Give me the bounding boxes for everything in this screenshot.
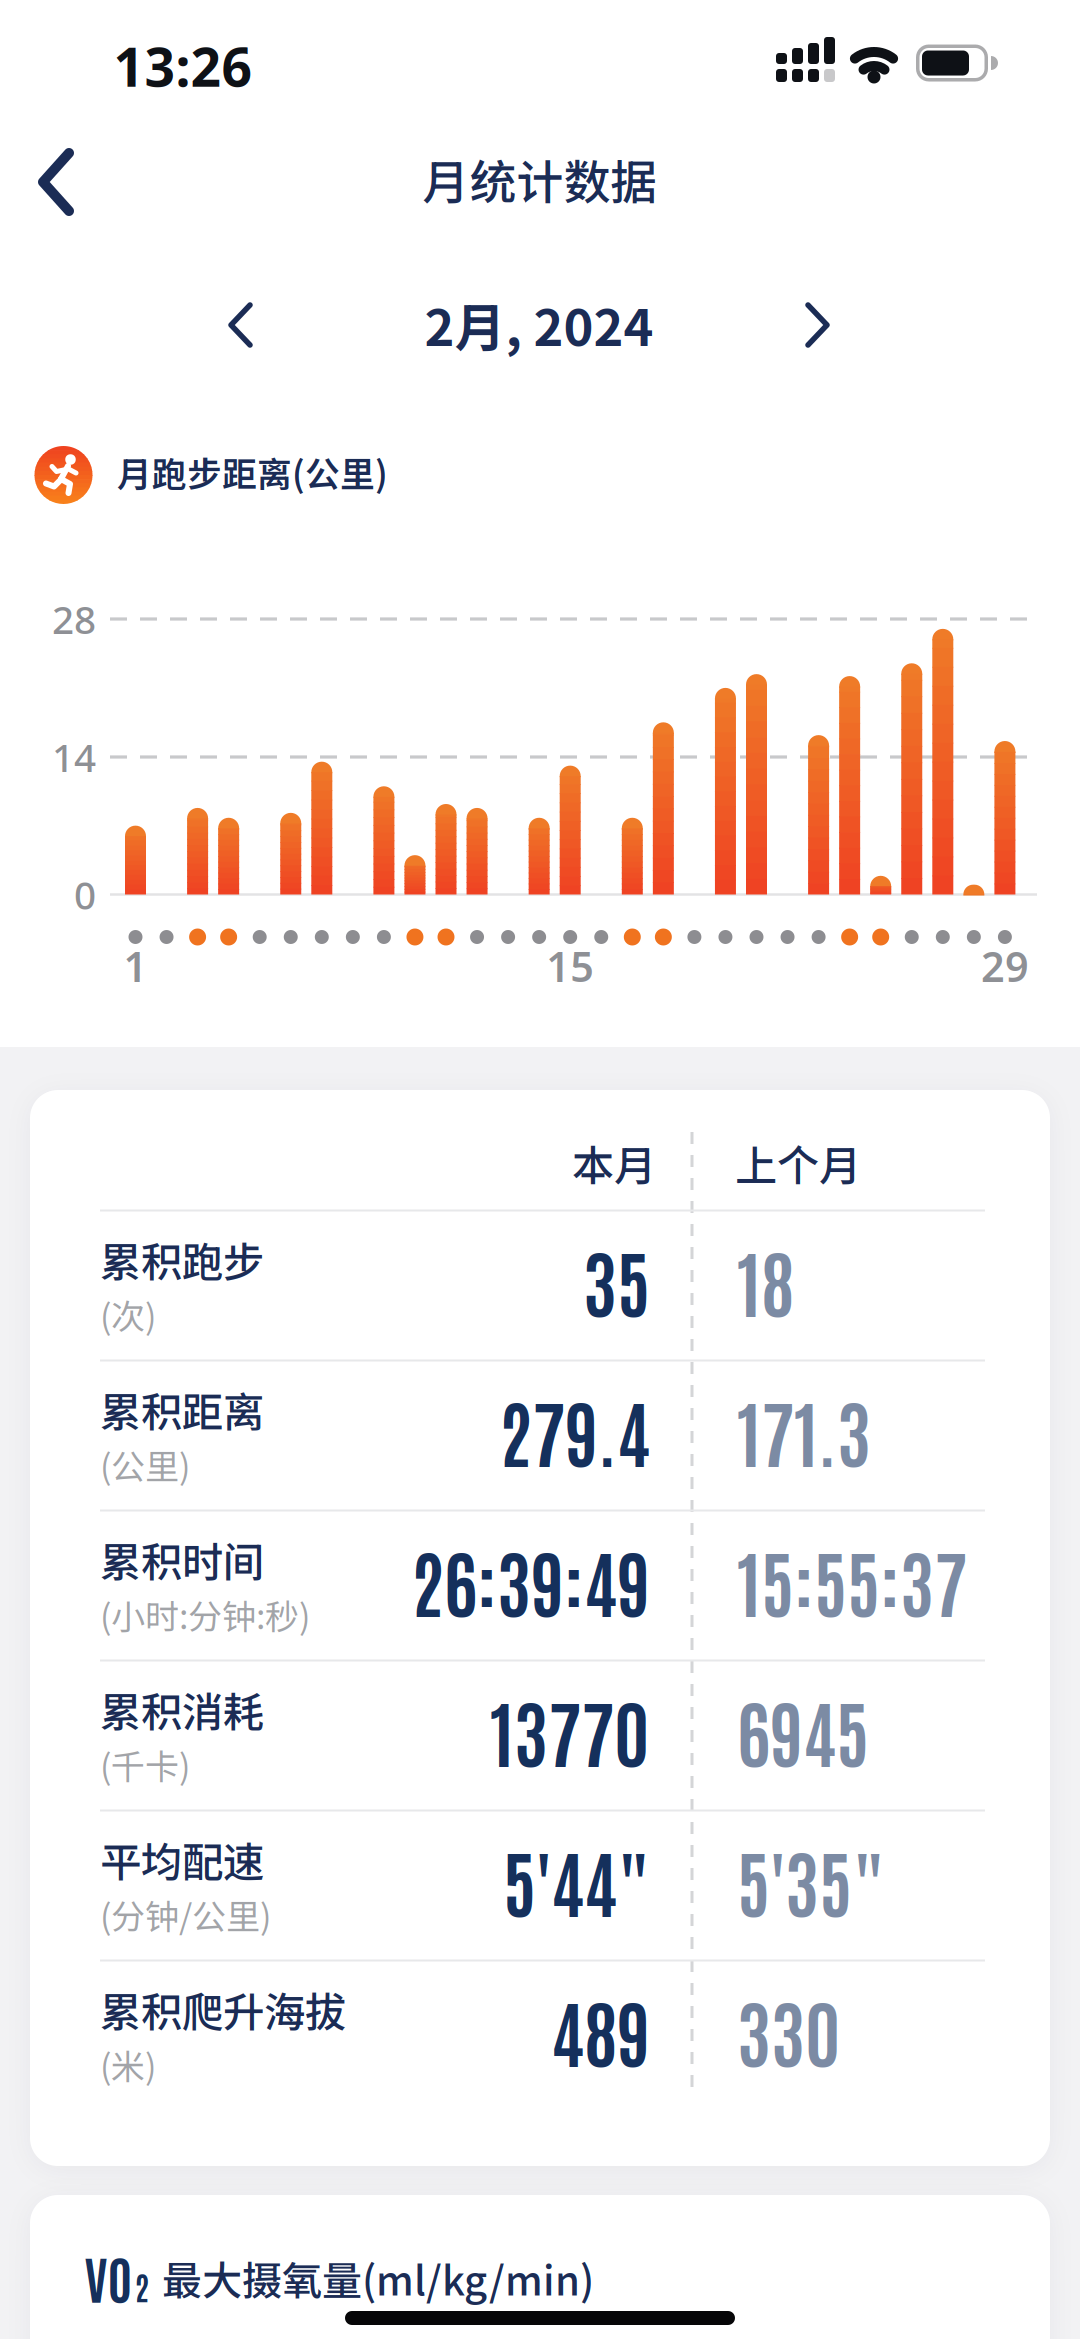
staticText: 平均配速 bbox=[100, 1830, 264, 1889]
button[interactable]: Previous month bbox=[230, 304, 274, 348]
staticText: 最大摄氧量(ml/kg/min) bbox=[162, 2249, 594, 2307]
staticText: 累积距离 bbox=[100, 1380, 264, 1439]
staticText: 35 bbox=[583, 1234, 650, 1327]
staticText: 累积爬升海拔 bbox=[100, 1980, 346, 2039]
staticText: 279.4 bbox=[499, 1384, 650, 1477]
staticText: 15:55:37 bbox=[737, 1534, 967, 1627]
staticText: 月统计数据 bbox=[422, 145, 657, 213]
staticText: (公里) bbox=[100, 1440, 190, 1489]
staticText: 累积消耗 bbox=[100, 1680, 264, 1739]
staticText: 上个月 bbox=[735, 1133, 861, 1193]
staticText: (次) bbox=[100, 1290, 156, 1339]
button[interactable]: Back bbox=[42, 152, 102, 212]
staticText: 26:39:49 bbox=[411, 1534, 650, 1627]
staticText: 月跑步距离(公里) bbox=[117, 447, 388, 497]
staticText: 累积时间 bbox=[100, 1530, 264, 1589]
staticText: 171.3 bbox=[737, 1384, 871, 1477]
staticText: 本月 bbox=[572, 1133, 656, 1193]
staticText: 5'44" bbox=[503, 1834, 650, 1927]
staticText: 1 bbox=[123, 939, 147, 993]
staticText: (小时:分钟:秒) bbox=[100, 1590, 310, 1639]
staticText: (米) bbox=[100, 2040, 156, 2089]
staticText: 28 bbox=[52, 593, 96, 645]
staticText: 29 bbox=[981, 939, 1029, 993]
staticText: 0 bbox=[74, 869, 96, 920]
staticText: 13:26 bbox=[113, 31, 252, 101]
staticText: 330 bbox=[737, 1984, 841, 2077]
staticText: 2 bbox=[134, 2265, 149, 2307]
staticText: 15 bbox=[546, 939, 594, 993]
staticText: 13770 bbox=[490, 1684, 650, 1777]
staticText: 5'35" bbox=[737, 1834, 885, 1927]
button[interactable]: Next month bbox=[807, 304, 851, 348]
staticText: (分钟/公里) bbox=[100, 1890, 271, 1939]
staticText: 累积跑步 bbox=[100, 1230, 264, 1289]
staticText: 2月, 2024 bbox=[424, 287, 653, 361]
staticText: 6945 bbox=[737, 1684, 869, 1777]
staticText: 14 bbox=[52, 731, 96, 783]
staticText: 18 bbox=[737, 1234, 794, 1327]
staticText: 489 bbox=[551, 1984, 650, 2077]
staticText: (千卡) bbox=[100, 1740, 190, 1789]
staticText: VO bbox=[84, 2244, 132, 2310]
